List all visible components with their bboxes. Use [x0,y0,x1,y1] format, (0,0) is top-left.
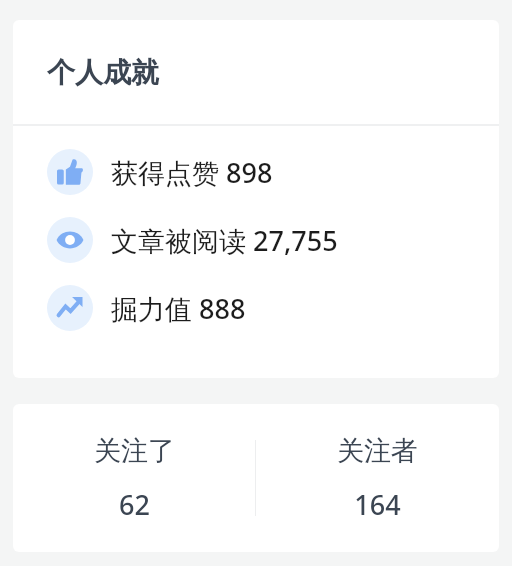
staticText: 获得点赞 898 [111,154,273,191]
button[interactable]: Likes [13,138,499,206]
button[interactable]: 关注者 [256,404,499,552]
staticText: 关注了 [94,434,175,468]
staticText: 164 [354,486,401,523]
staticText: 关注者 [337,434,418,468]
staticText: 个人成就 [47,55,159,90]
staticText: 文章被阅读 27,755 [111,222,338,259]
staticText: 掘力值 888 [111,290,246,327]
button[interactable]: Power value [13,274,499,342]
button[interactable]: 关注了 [13,404,255,552]
other: Power value [47,285,93,331]
other: Views [47,217,93,263]
staticText: 62 [119,486,150,523]
button[interactable]: Views [13,206,499,274]
other: Likes [47,149,93,195]
